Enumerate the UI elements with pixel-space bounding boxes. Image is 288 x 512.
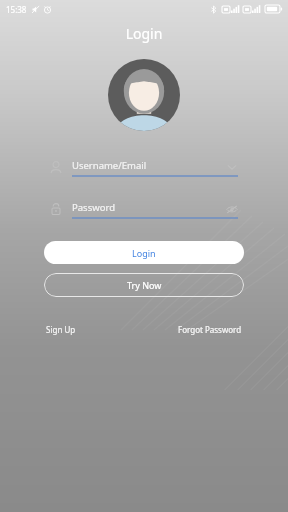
button[interactable]: Login xyxy=(44,241,244,264)
button[interactable]: Show password xyxy=(224,201,240,217)
button[interactable]: Sign Up xyxy=(44,321,78,338)
button[interactable]: Forgot Password xyxy=(176,321,244,338)
staticText: Sign Up xyxy=(46,324,76,335)
staticText: Login xyxy=(132,247,156,259)
staticText: 15:38 xyxy=(6,4,27,15)
button[interactable]: Try Now xyxy=(44,273,244,297)
staticText: Try Now xyxy=(127,279,162,291)
staticText: Username/Email xyxy=(72,159,147,172)
button[interactable]: Password xyxy=(48,195,240,223)
button[interactable]: Username/Email xyxy=(48,153,240,181)
staticText: Forgot Password xyxy=(178,324,242,335)
staticText: Login xyxy=(0,24,288,43)
staticText: Password xyxy=(72,201,115,214)
